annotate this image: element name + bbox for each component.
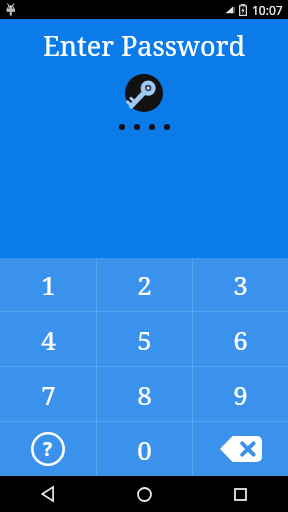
button[interactable]: Help xyxy=(0,422,96,476)
staticText: 0 xyxy=(137,432,152,467)
button[interactable]: 9 xyxy=(193,367,288,421)
staticText: 1 xyxy=(41,267,56,302)
button[interactable]: 2 xyxy=(97,258,192,311)
button[interactable]: Back xyxy=(0,476,96,512)
staticText: ? xyxy=(43,436,53,462)
button[interactable]: Backspace xyxy=(193,422,288,476)
staticText: 5 xyxy=(137,322,152,357)
button[interactable]: 7 xyxy=(0,367,96,421)
button[interactable]: 4 xyxy=(0,312,96,366)
staticText: 2 xyxy=(137,267,152,302)
button[interactable]: 8 xyxy=(97,367,192,421)
button[interactable]: Home xyxy=(96,476,192,512)
staticText: 9 xyxy=(233,377,248,412)
staticText: 6 xyxy=(233,322,248,357)
button[interactable]: 5 xyxy=(97,312,192,366)
button[interactable]: 3 xyxy=(193,258,288,311)
staticText: 8 xyxy=(137,377,152,412)
staticText: 10:07 xyxy=(252,2,283,18)
button[interactable]: 1 xyxy=(0,258,96,311)
button[interactable]: 6 xyxy=(193,312,288,366)
staticText: 3 xyxy=(233,267,248,302)
button[interactable]: Recent apps xyxy=(192,476,288,512)
staticText: Enter Password xyxy=(43,27,245,64)
staticText: 7 xyxy=(41,377,56,412)
staticText: 4 xyxy=(41,322,56,357)
button[interactable]: 0 xyxy=(97,422,192,476)
